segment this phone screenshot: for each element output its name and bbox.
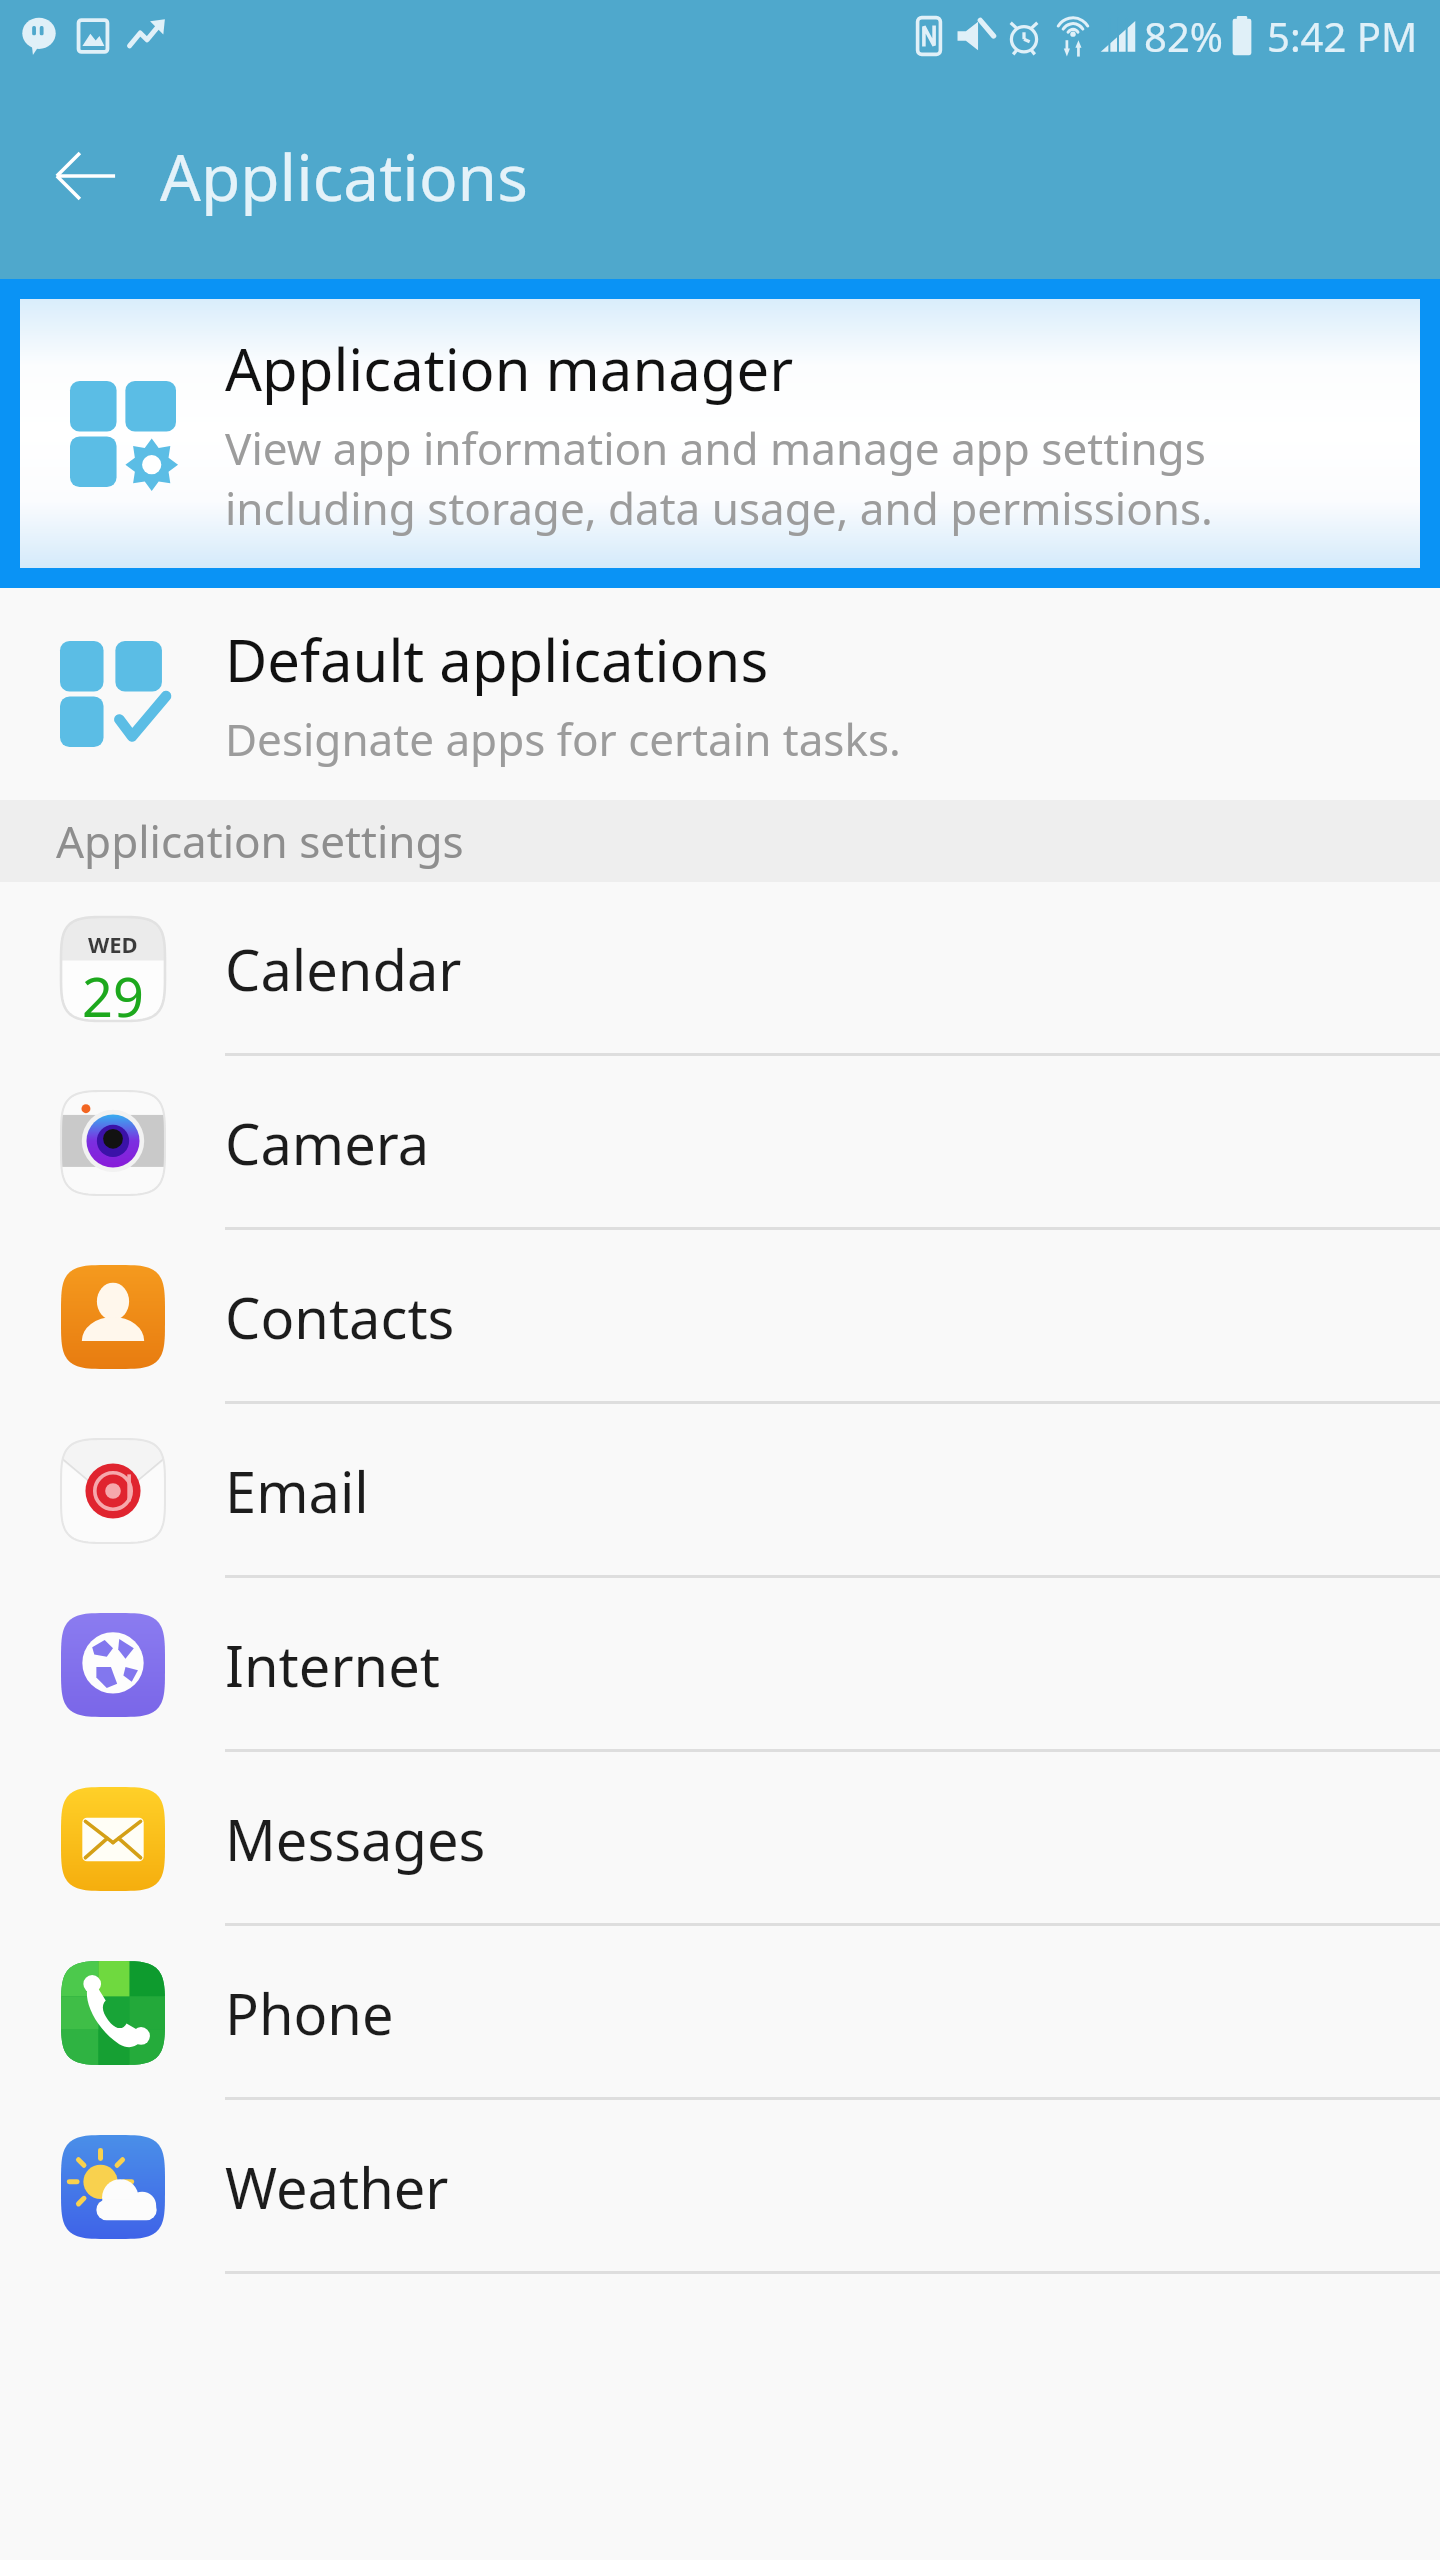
staticText: Application manager xyxy=(225,329,794,408)
staticText: Calendar xyxy=(225,931,462,1007)
button[interactable]: Messages xyxy=(0,1752,1440,1926)
staticText: including storage, data usage, and permi… xyxy=(225,478,1213,538)
staticText: Weather xyxy=(225,2149,449,2225)
staticText: Contacts xyxy=(225,1279,455,1355)
staticText: View app information and manage app sett… xyxy=(225,418,1206,478)
staticText: Internet xyxy=(225,1627,440,1703)
staticText: Applications xyxy=(160,133,528,220)
staticText: 82% xyxy=(1144,9,1223,63)
button[interactable]: Navigate back xyxy=(40,131,130,221)
staticText: Messages xyxy=(225,1801,486,1877)
button[interactable]: Internet xyxy=(0,1578,1440,1752)
staticText: Default applications xyxy=(225,620,769,699)
button[interactable]: Email xyxy=(0,1404,1440,1578)
staticText: Phone xyxy=(225,1975,394,2051)
staticText: WED xyxy=(88,929,138,959)
button[interactable]: Camera xyxy=(0,1056,1440,1230)
button[interactable]: Phone xyxy=(0,1926,1440,2100)
button[interactable]: Weather xyxy=(0,2100,1440,2274)
staticText: Application settings xyxy=(56,811,464,871)
staticText: Email xyxy=(225,1453,369,1529)
button[interactable]: WED xyxy=(0,882,1440,1056)
staticText: 5:42 PM xyxy=(1267,9,1418,63)
button[interactable]: Contacts xyxy=(0,1230,1440,1404)
button[interactable]: Default applications xyxy=(0,588,1440,800)
button[interactable]: Application manager xyxy=(0,279,1440,588)
staticText: Camera xyxy=(225,1105,430,1181)
staticText: 29 xyxy=(82,959,144,1021)
staticText: Designate apps for certain tasks. xyxy=(225,709,901,769)
